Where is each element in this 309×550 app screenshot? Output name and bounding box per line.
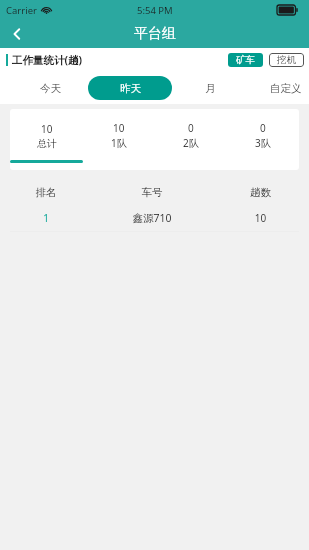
staticText: 10 <box>113 121 125 135</box>
staticText: 总计 <box>37 137 57 150</box>
staticText: 10 <box>212 211 309 225</box>
staticText: 3队 <box>255 136 271 150</box>
staticText: 2队 <box>183 136 199 150</box>
staticText: 挖机 <box>277 54 296 66</box>
staticText: 5:54 PM <box>137 4 173 17</box>
button[interactable]: 今天 <box>28 77 73 100</box>
staticText: 今天 <box>40 82 61 95</box>
staticText: 0 <box>188 121 194 135</box>
staticText: 自定义 <box>270 82 302 95</box>
button[interactable]: 1 <box>0 205 309 231</box>
button[interactable]: 自定义 <box>270 77 302 100</box>
button[interactable]: 月 <box>197 77 224 100</box>
button[interactable]: 10 <box>83 109 155 170</box>
staticText: 鑫源710 <box>92 211 212 225</box>
staticText: 工作量统计(趟) <box>12 53 83 67</box>
button[interactable]: 矿车 <box>228 53 263 67</box>
staticText: 趟数 <box>212 186 309 199</box>
button[interactable]: Back <box>0 20 34 48</box>
button[interactable]: 0 <box>155 109 227 170</box>
staticText: 月 <box>205 82 216 95</box>
staticText: 排名 <box>0 186 92 199</box>
staticText: Carrier <box>6 4 37 17</box>
staticText: 1队 <box>111 136 127 150</box>
button[interactable]: 0 <box>227 109 299 170</box>
staticText: 平台组 <box>134 25 176 43</box>
staticText: 1 <box>0 211 92 225</box>
button[interactable]: 10 <box>10 109 83 170</box>
staticText: 0 <box>260 121 266 135</box>
button[interactable]: 昨天 <box>88 76 172 100</box>
button[interactable]: 挖机 <box>269 53 304 67</box>
staticText: 矿车 <box>236 54 255 66</box>
staticText: 10 <box>41 122 53 136</box>
staticText: 车号 <box>92 186 212 199</box>
staticText: 昨天 <box>120 82 141 95</box>
